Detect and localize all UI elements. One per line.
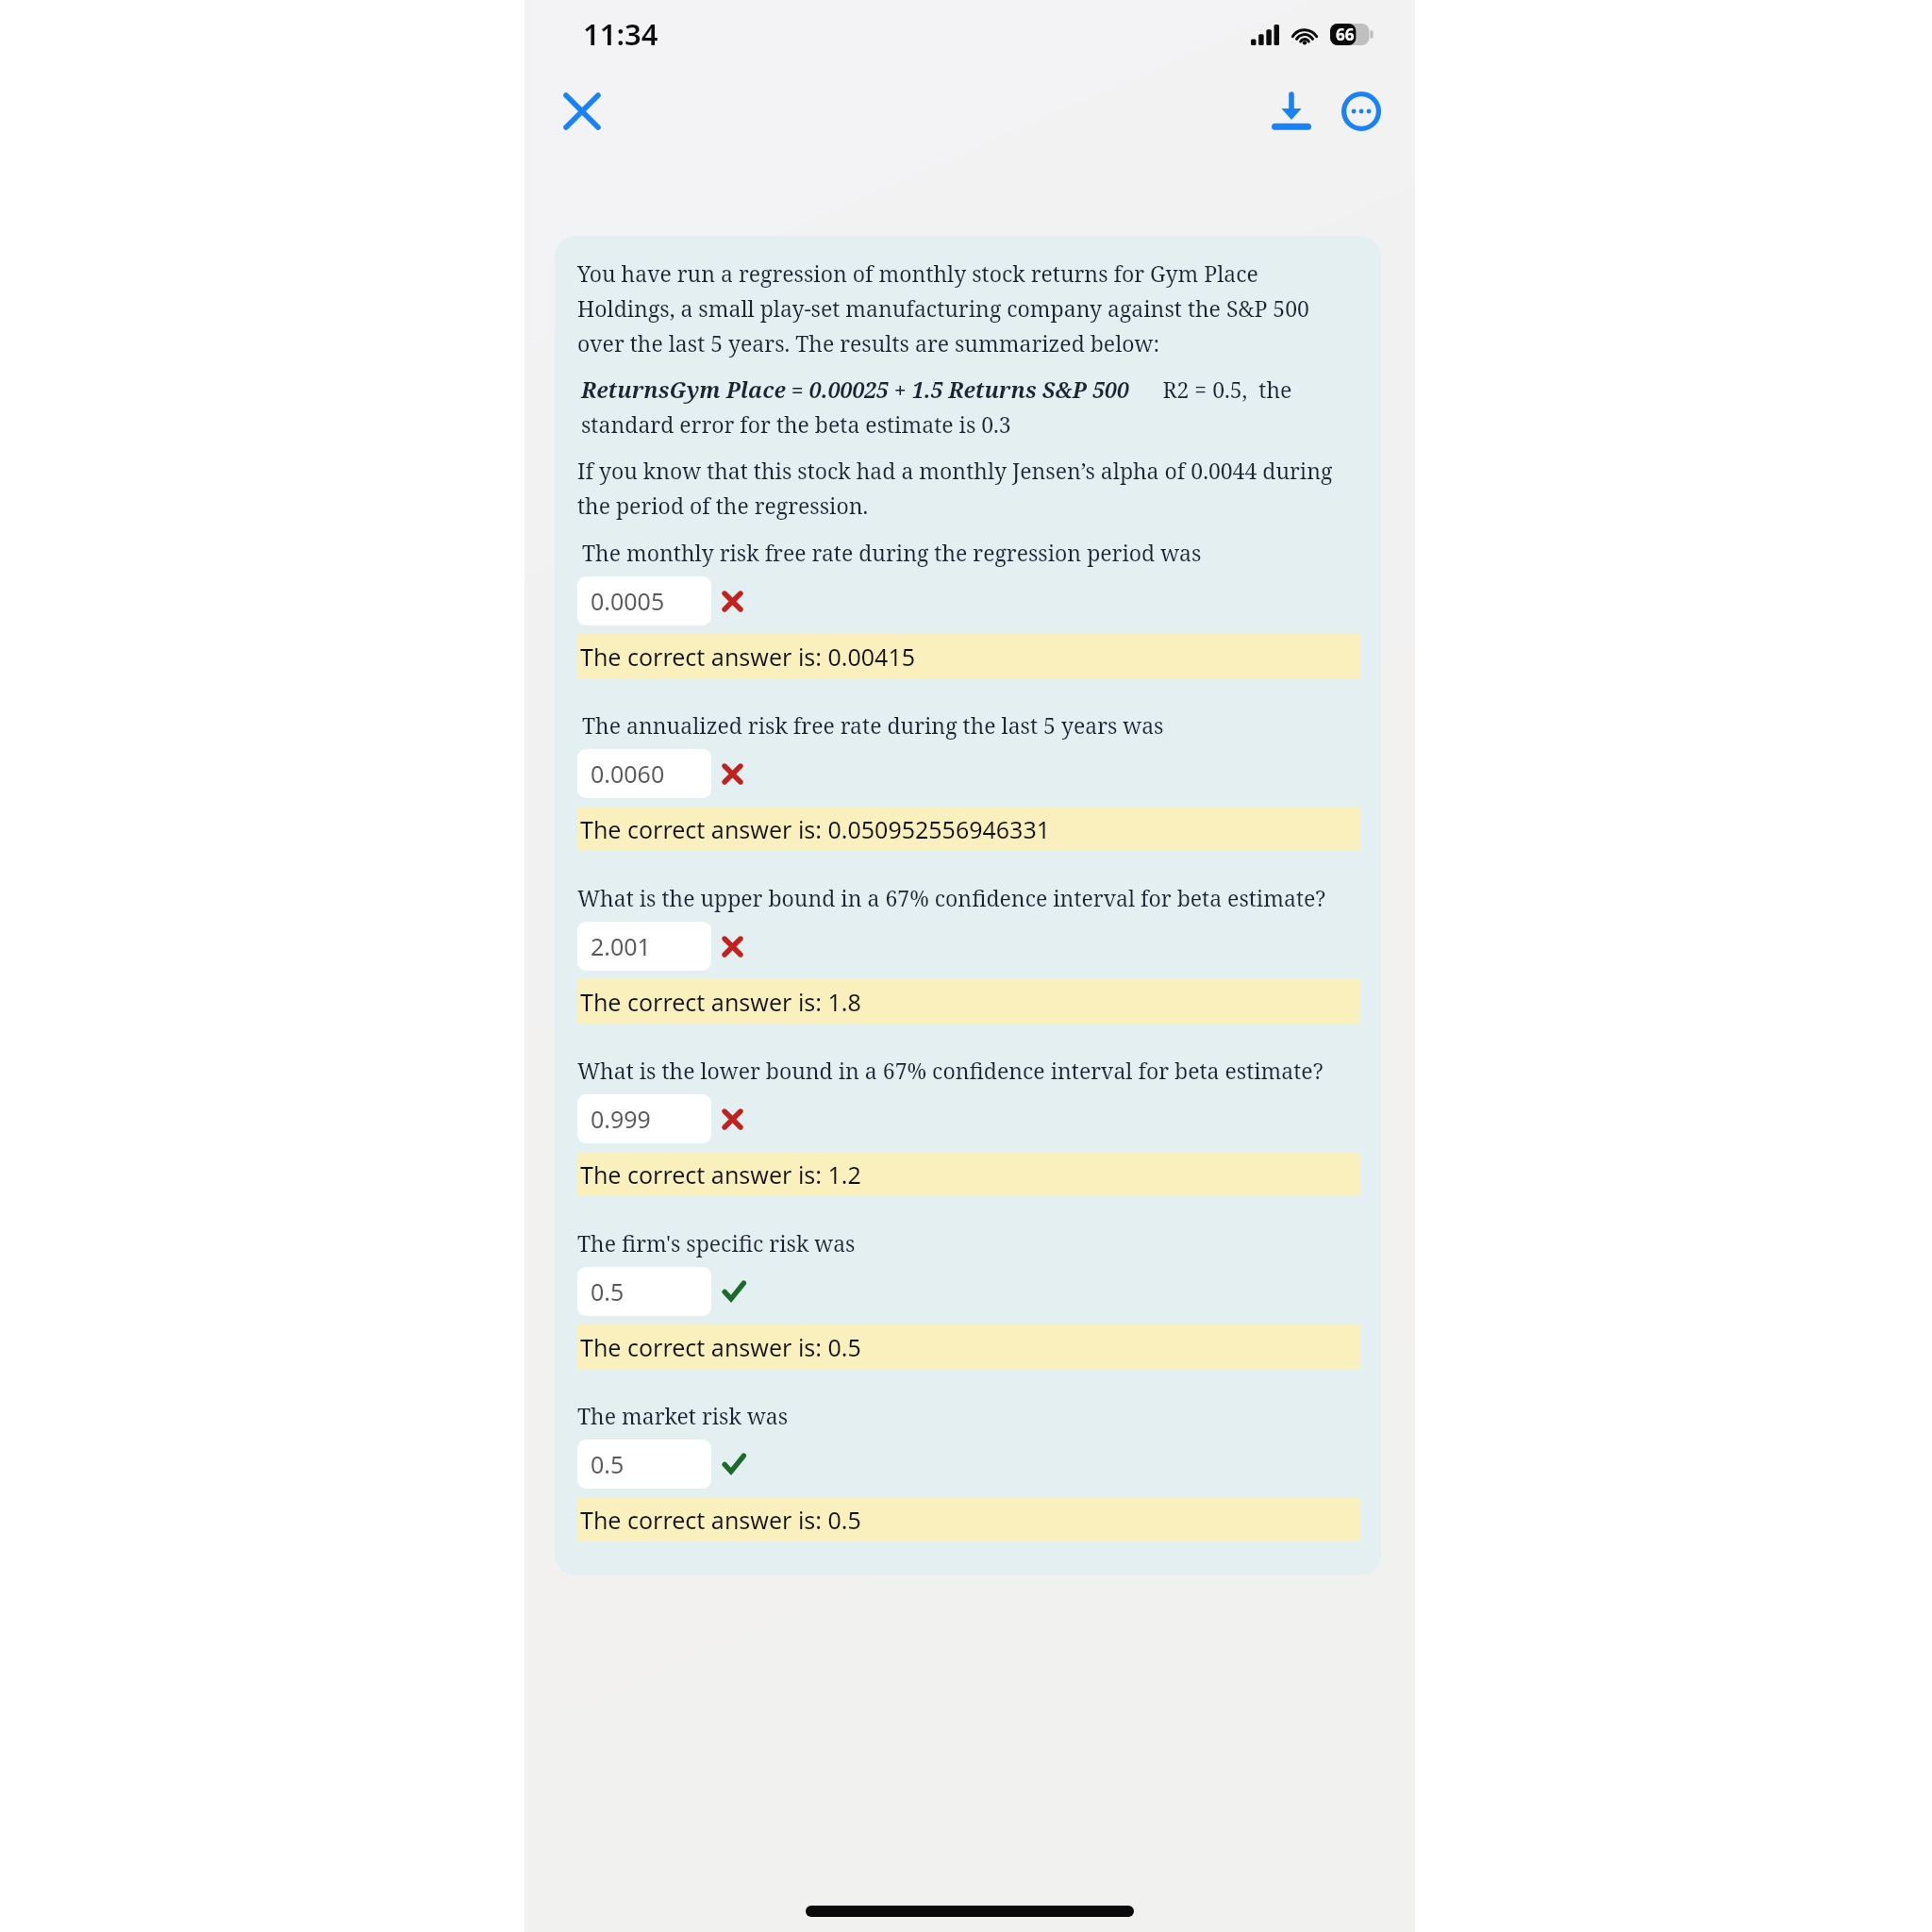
staticText: The market risk was [577, 1401, 789, 1430]
staticText: The correct answer is: 1.8 [580, 986, 861, 1018]
staticText: 0.5 [591, 1448, 625, 1480]
staticText: The correct answer is: 0.00415 [580, 641, 916, 673]
button[interactable]: 2.001 [577, 922, 711, 971]
staticText: The firm's specific risk was [577, 1228, 856, 1257]
staticText: The correct answer is: 1.2 [580, 1158, 861, 1191]
button[interactable]: More options [1332, 82, 1391, 141]
staticText: ReturnsGym Place = 0.00025 + 1.5 Returns… [581, 375, 1360, 440]
button[interactable]: 0.0005 [577, 576, 711, 625]
staticText: What is the upper bound in a 67% confide… [577, 883, 1326, 912]
staticText: 0.0060 [591, 758, 665, 790]
button[interactable]: 0.5 [577, 1267, 711, 1316]
staticText: 66 [1336, 24, 1355, 45]
button[interactable]: Close [553, 82, 611, 141]
staticText: You have run a regression of monthly sto… [577, 258, 1360, 358]
staticText: 0.999 [591, 1103, 651, 1135]
button[interactable]: 0.5 [577, 1440, 711, 1489]
staticText: 0.0005 [591, 585, 665, 617]
staticText: The monthly risk free rate during the re… [582, 538, 1202, 567]
staticText: 11:34 [583, 14, 658, 54]
button[interactable]: Download [1262, 82, 1321, 141]
staticText: 2.001 [591, 930, 651, 962]
staticText: If you know that this stock had a monthl… [577, 456, 1360, 521]
staticText: What is the lower bound in a 67% confide… [577, 1056, 1324, 1085]
staticText: The correct answer is: 0.050952556946331 [580, 813, 1051, 845]
staticText: 0.5 [591, 1275, 625, 1307]
staticText: The annualized risk free rate during the… [582, 710, 1164, 740]
button[interactable]: 0.999 [577, 1094, 711, 1143]
staticText: The correct answer is: 0.5 [580, 1331, 861, 1363]
button[interactable]: 0.0060 [577, 749, 711, 798]
staticText: The correct answer is: 0.5 [580, 1504, 861, 1536]
